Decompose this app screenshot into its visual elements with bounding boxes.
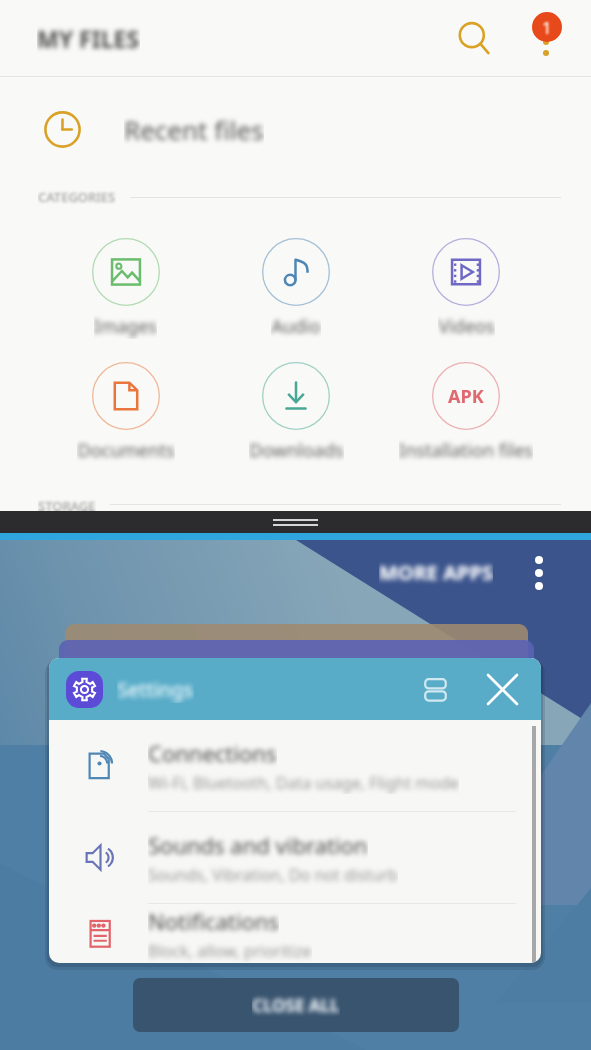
staticText: Audio — [271, 314, 321, 339]
staticText: Downloads — [249, 438, 344, 463]
staticText: APK — [448, 384, 484, 409]
button[interactable]: APK — [381, 362, 551, 463]
staticText: STORAGE — [38, 497, 96, 511]
staticText: Connections — [148, 738, 277, 768]
staticText: Sounds, Vibration, Do not disturb — [148, 864, 398, 886]
button[interactable]: Settings — [49, 658, 541, 720]
staticText: Notifications — [148, 906, 279, 936]
staticText: CATEGORIES — [38, 188, 116, 206]
staticText: Installation files — [399, 438, 533, 463]
button[interactable]: Images — [40, 238, 211, 339]
button[interactable]: Audio — [211, 238, 381, 339]
button[interactable]: Downloads — [211, 362, 381, 463]
button[interactable]: Connections — [49, 720, 541, 811]
staticText: Wi-Fi, Bluetooth, Data usage, Flight mod… — [148, 772, 459, 794]
button[interactable]: Videos — [381, 238, 551, 339]
button[interactable]: Documents — [40, 362, 211, 463]
staticText: Settings — [117, 676, 194, 703]
staticText: CLOSE ALL — [252, 994, 340, 1017]
button[interactable]: Close — [481, 668, 523, 710]
button[interactable]: MORE APPS — [379, 559, 493, 586]
button[interactable]: Search — [449, 13, 501, 65]
button[interactable]: CLOSE ALL — [133, 978, 459, 1032]
staticText: MY FILES — [37, 23, 140, 54]
staticText: Videos — [438, 314, 495, 339]
staticText: Block, allow, prioritize — [148, 940, 312, 962]
button[interactable]: More options — [530, 551, 548, 595]
button[interactable]: Split screen — [416, 670, 454, 708]
staticText: Sounds and vibration — [148, 830, 368, 860]
staticText: Images — [94, 314, 157, 339]
button[interactable]: Recent files — [0, 77, 591, 182]
staticText: Recent files — [124, 112, 264, 147]
button[interactable]: Sounds and vibration — [49, 812, 541, 903]
staticText: 1 — [542, 16, 552, 39]
button[interactable]: More options — [520, 13, 572, 65]
staticText: Documents — [77, 438, 175, 463]
button[interactable]: Notifications — [49, 904, 541, 963]
